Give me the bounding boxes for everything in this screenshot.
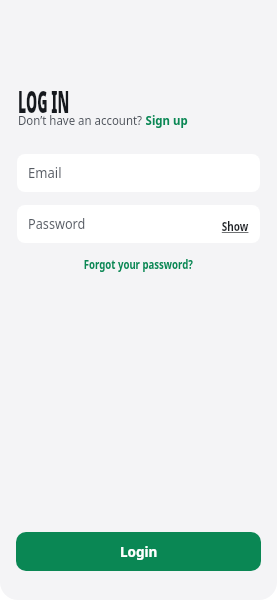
staticText: Login <box>120 543 158 561</box>
button[interactable]: Show <box>215 214 260 235</box>
button[interactable]: Forgot your password? <box>70 256 207 272</box>
staticText: Email <box>28 164 62 182</box>
button[interactable]: Sign up <box>146 111 188 129</box>
staticText: LOG IN <box>18 81 69 122</box>
button[interactable]: Password <box>17 205 260 243</box>
staticText: Password <box>28 215 86 233</box>
button[interactable]: Login <box>16 532 261 571</box>
button[interactable]: Email <box>17 154 260 192</box>
staticText: Don’t have an account? <box>18 111 146 129</box>
